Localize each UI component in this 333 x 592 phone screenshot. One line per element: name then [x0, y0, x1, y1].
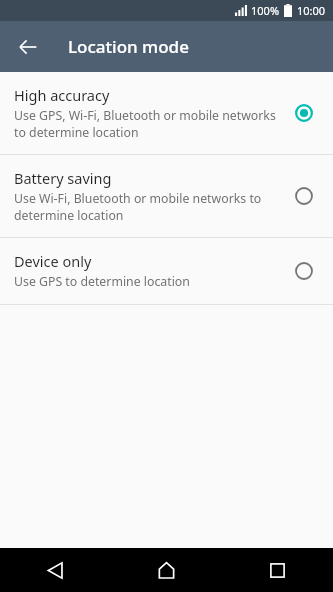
staticText: 100% — [251, 3, 280, 18]
button[interactable]: Home — [111, 548, 222, 592]
staticText: Use GPS, Wi-Fi, Bluetooth or mobile netw… — [14, 107, 276, 140]
staticText: Location mode — [68, 35, 189, 58]
staticText: Use GPS to determine location — [14, 273, 190, 290]
button[interactable]: High accuracy — [0, 72, 333, 154]
staticText: Device only — [14, 251, 92, 271]
button[interactable]: Back — [8, 27, 48, 67]
button[interactable]: Device only — [0, 238, 333, 304]
staticText: High accuracy — [14, 85, 110, 105]
button[interactable]: Back — [0, 548, 111, 592]
button[interactable]: Battery saving — [0, 155, 333, 237]
staticText: Use Wi-Fi, Bluetooth or mobile networks … — [14, 190, 262, 223]
button[interactable]: Recent apps — [222, 548, 333, 592]
staticText: 10:00 — [297, 3, 326, 18]
staticText: Battery saving — [14, 168, 112, 188]
